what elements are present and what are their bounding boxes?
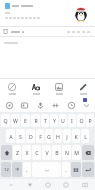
staticText: W (13, 117, 18, 124)
staticText: R (34, 117, 38, 124)
button[interactable]: Font (25, 79, 47, 98)
button[interactable]: P (86, 114, 94, 127)
button[interactable]: T (41, 114, 49, 127)
button[interactable]: . (62, 162, 70, 177)
staticText: P (88, 117, 92, 124)
button[interactable]: Key (1, 145, 12, 160)
button[interactable]: J (63, 129, 71, 143)
button[interactable]: Gallery (17, 98, 31, 112)
button[interactable]: L (81, 129, 89, 143)
staticText: C (35, 149, 39, 156)
staticText: U (61, 117, 65, 124)
button[interactable]: A (6, 129, 15, 143)
button[interactable]: Draw (72, 79, 94, 98)
button[interactable]: N (62, 145, 71, 160)
button[interactable]: K (72, 129, 80, 143)
staticText: E (24, 117, 27, 124)
staticText: M (74, 149, 79, 156)
button[interactable]: Sticker (2, 98, 16, 112)
staticText: L (84, 133, 87, 140)
staticText: , (26, 166, 28, 173)
button[interactable]: H (54, 129, 62, 143)
staticText: 中 (15, 167, 20, 172)
button[interactable]: O (77, 114, 85, 127)
button[interactable]: , (23, 162, 31, 177)
button[interactable]: D (26, 129, 35, 143)
button[interactable]: B (52, 145, 61, 160)
staticText: Z (16, 149, 19, 156)
staticText: S (19, 133, 22, 140)
button[interactable]: Key (82, 145, 94, 160)
staticText: . (65, 166, 67, 173)
button[interactable]: Back (22, 179, 37, 190)
staticText: V (45, 149, 49, 156)
button[interactable]: S (16, 129, 25, 143)
button[interactable]: Key (71, 162, 81, 177)
staticText: K (74, 133, 78, 140)
button[interactable] (2, 1, 93, 25)
button[interactable]: F (36, 129, 44, 143)
staticText: T (44, 117, 47, 124)
button[interactable]: C (32, 145, 41, 160)
button[interactable]: X (22, 145, 31, 160)
button[interactable]: 中 (12, 162, 22, 177)
staticText: H (56, 133, 60, 140)
button[interactable]: E (21, 114, 30, 127)
staticText: F (39, 133, 42, 140)
button[interactable]: V (42, 145, 51, 160)
button[interactable]: Y (50, 114, 58, 127)
button[interactable]: Voice (33, 98, 47, 112)
button[interactable]: Collapse (79, 98, 93, 112)
button[interactable]: Split screen (77, 179, 92, 190)
staticText: N (65, 149, 69, 156)
button[interactable]: Home (40, 179, 55, 190)
staticText: 12 (4, 167, 9, 173)
staticText: Y (53, 117, 56, 124)
button[interactable]: Emoji (1, 79, 23, 98)
button[interactable]: Q (1, 114, 10, 127)
button[interactable]: Hide keyboard (3, 179, 18, 190)
button[interactable]: Image (48, 79, 70, 98)
button[interactable]: Clock (64, 98, 78, 112)
button[interactable]: R (31, 114, 40, 127)
button[interactable]: Z (13, 145, 21, 160)
staticText: I (71, 117, 73, 124)
button[interactable]: U (59, 114, 67, 127)
button[interactable]: Settings (48, 98, 62, 112)
staticText: G (47, 133, 51, 140)
staticText: B (55, 149, 59, 156)
staticText: D (29, 133, 33, 140)
button[interactable]: I (68, 114, 76, 127)
button[interactable]: M (72, 145, 81, 160)
button[interactable]: Attachment (3, 29, 8, 34)
staticText: J (66, 133, 68, 140)
button[interactable]: Key (82, 162, 94, 177)
button[interactable]: W (11, 114, 20, 127)
staticText: O (79, 117, 84, 124)
button[interactable]: G (45, 129, 53, 143)
staticText: X (25, 149, 29, 156)
button[interactable]: Recents (58, 179, 73, 190)
button[interactable]: Key (32, 162, 61, 177)
button[interactable]: 12 (1, 162, 11, 177)
staticText: A (9, 133, 13, 140)
staticText: Q (3, 117, 8, 124)
